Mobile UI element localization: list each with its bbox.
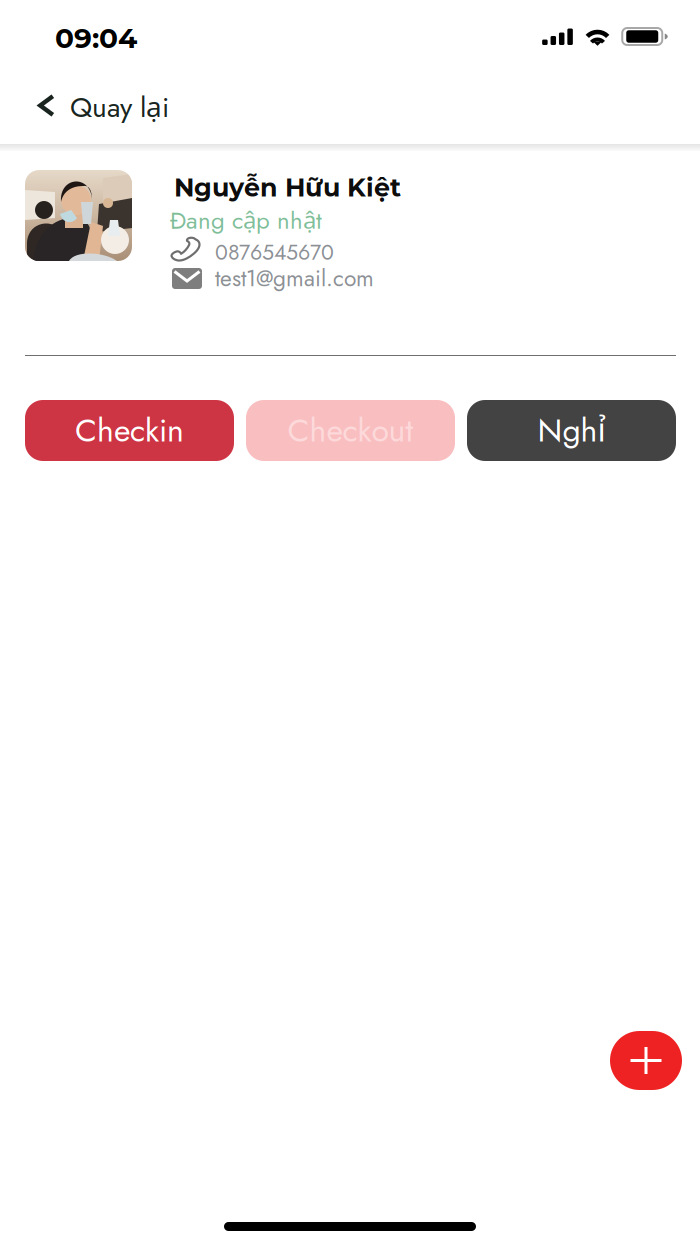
button[interactable]: Checkout <box>246 400 455 461</box>
button[interactable]: Add <box>610 1031 682 1090</box>
staticText: 0876545670 <box>215 237 334 268</box>
staticText: Nghỉ <box>537 407 605 454</box>
staticText: test1@gmail.com <box>215 262 374 295</box>
staticText: Quay lại <box>70 87 169 127</box>
staticText: Checkout <box>287 407 413 454</box>
staticText: 09:04 <box>55 21 137 55</box>
button[interactable]: Nghỉ <box>467 400 676 461</box>
staticText: Nguyễn Hữu Kiệt <box>174 172 401 203</box>
staticText: Đang cập nhật <box>170 203 322 238</box>
button[interactable]: Quay lại <box>0 62 200 144</box>
staticText: Checkin <box>75 407 184 454</box>
button[interactable]: Checkin <box>25 400 234 461</box>
